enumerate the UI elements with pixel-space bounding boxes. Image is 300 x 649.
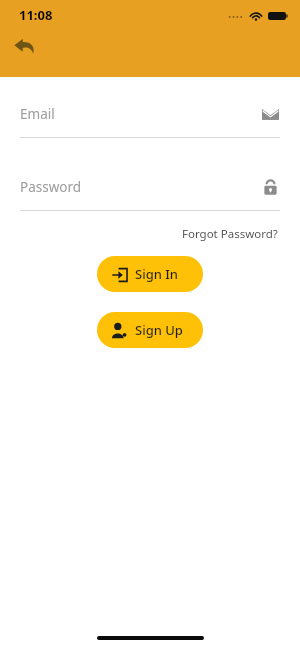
- button[interactable]: Sign In: [97, 256, 203, 292]
- button[interactable]: Email: [0, 101, 300, 138]
- staticText: 11:08: [19, 6, 53, 24]
- other: Password: [260, 177, 280, 197]
- staticText: Sign Up: [135, 321, 183, 339]
- other: Email: [260, 104, 280, 124]
- staticText: Email: [20, 105, 55, 123]
- staticText: Forgot Password?: [182, 226, 278, 242]
- button[interactable]: Sign Up: [97, 312, 203, 348]
- button[interactable]: Forgot Password?: [180, 224, 280, 244]
- button[interactable]: Password: [0, 174, 300, 211]
- staticText: Password: [20, 178, 82, 196]
- staticText: Sign In: [135, 265, 179, 283]
- button[interactable]: Back: [8, 31, 40, 63]
